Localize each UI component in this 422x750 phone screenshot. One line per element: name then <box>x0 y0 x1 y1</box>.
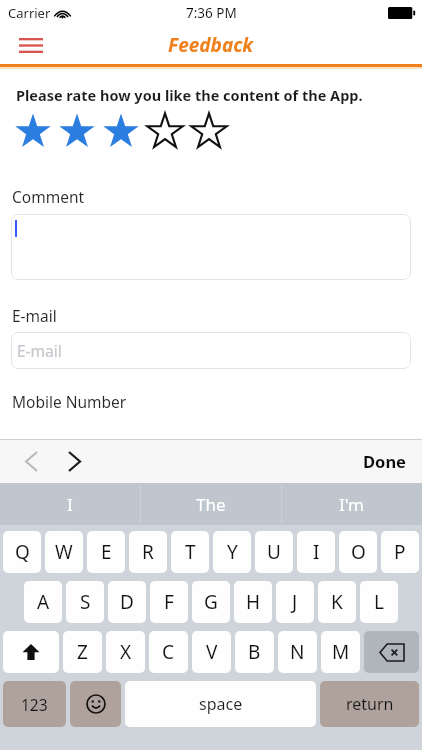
button[interactable]: Shift <box>3 631 59 673</box>
staticText: I <box>67 493 73 516</box>
staticText: 7:36 PM <box>186 4 237 22</box>
button[interactable]: A <box>24 581 62 623</box>
button[interactable]: X <box>106 631 145 673</box>
button[interactable]: Done <box>357 444 412 478</box>
button[interactable]: Rate 1 stars <box>11 112 55 152</box>
button[interactable]: F <box>150 581 188 623</box>
button[interactable]: space <box>125 681 316 727</box>
button[interactable]: The <box>140 483 281 525</box>
button[interactable]: K <box>318 581 356 623</box>
staticText: U <box>267 539 281 565</box>
button[interactable]: T <box>171 531 209 573</box>
staticText: A <box>37 589 50 615</box>
button[interactable]: Y <box>213 531 251 573</box>
button[interactable]: W <box>45 531 83 573</box>
staticText: space <box>199 693 243 715</box>
button[interactable]: O <box>339 531 377 573</box>
button[interactable]: Backspace <box>364 631 419 673</box>
staticText: E <box>101 539 112 565</box>
button[interactable]: Q <box>3 531 41 573</box>
staticText: O <box>351 539 366 565</box>
staticText: E-mail <box>12 305 57 326</box>
staticText: Q <box>15 539 30 565</box>
button[interactable]: R <box>129 531 167 573</box>
button[interactable]: Rate 2 stars <box>55 112 99 152</box>
staticText: Mobile Number <box>12 391 127 412</box>
staticText: M <box>332 639 350 665</box>
button[interactable]: Emoji <box>70 681 121 727</box>
button[interactable]: Rate 4 stars <box>143 112 187 152</box>
button[interactable]: B <box>235 631 274 673</box>
staticText: F <box>164 589 174 615</box>
staticText: Z <box>77 639 88 665</box>
staticText: L <box>374 589 384 615</box>
button[interactable]: C <box>149 631 188 673</box>
button[interactable]: 123 <box>3 681 66 727</box>
button[interactable]: U <box>255 531 293 573</box>
staticText: P <box>394 539 406 565</box>
staticText: Comment <box>12 186 85 207</box>
staticText: X <box>120 639 132 665</box>
button[interactable]: Previous field <box>14 444 48 478</box>
staticText: I'm <box>339 493 364 516</box>
staticText: N <box>290 639 305 665</box>
staticText: T <box>185 539 196 565</box>
button[interactable]: E-mail <box>11 332 411 369</box>
button[interactable]: I'm <box>281 483 422 525</box>
staticText: I <box>313 539 320 565</box>
staticText: Y <box>227 539 238 565</box>
staticText: S <box>80 589 91 615</box>
staticText: W <box>55 539 73 565</box>
staticText: H <box>246 589 261 615</box>
button[interactable]: V <box>192 631 231 673</box>
button[interactable] <box>11 214 411 280</box>
staticText: J <box>292 589 298 615</box>
button[interactable]: I <box>0 483 140 525</box>
button[interactable]: G <box>192 581 230 623</box>
staticText: Feedback <box>168 32 254 58</box>
staticText: R <box>142 539 154 565</box>
staticText: V <box>206 639 218 665</box>
staticText: The <box>196 493 226 516</box>
button[interactable]: Menu <box>16 32 46 58</box>
staticText: return <box>346 693 394 715</box>
staticText: D <box>120 589 134 615</box>
staticText: K <box>331 589 343 615</box>
button[interactable]: M <box>321 631 360 673</box>
button[interactable]: H <box>234 581 272 623</box>
staticText: Please rate how you like the content of … <box>16 85 363 105</box>
staticText: 123 <box>21 694 48 715</box>
staticText: Carrier <box>8 4 51 22</box>
button[interactable]: Rate 5 stars <box>187 112 231 152</box>
button[interactable]: D <box>108 581 146 623</box>
staticText: E-mail <box>17 340 62 361</box>
button[interactable]: return <box>320 681 419 727</box>
button[interactable]: Next field <box>57 444 91 478</box>
staticText: C <box>162 639 175 665</box>
button[interactable]: P <box>381 531 419 573</box>
staticText: G <box>204 589 218 615</box>
button[interactable]: S <box>66 581 104 623</box>
button[interactable]: Rate 3 stars <box>99 112 143 152</box>
button[interactable]: N <box>278 631 317 673</box>
button[interactable]: Z <box>63 631 102 673</box>
button[interactable]: J <box>276 581 314 623</box>
staticText: B <box>248 639 261 665</box>
button[interactable]: L <box>360 581 398 623</box>
button[interactable]: E <box>87 531 125 573</box>
staticText: Done <box>363 450 406 472</box>
button[interactable]: I <box>297 531 335 573</box>
